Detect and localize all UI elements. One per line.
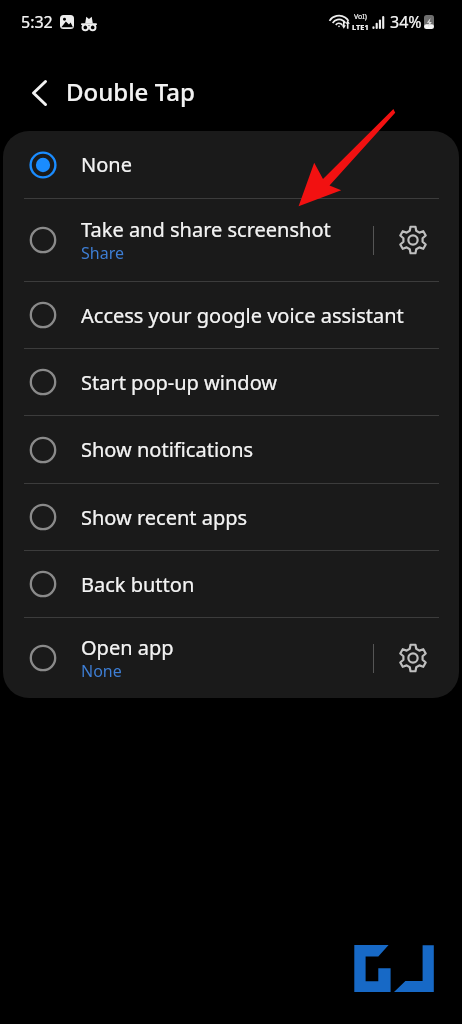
button[interactable]: Open app <box>3 618 459 698</box>
button[interactable]: Back <box>0 44 66 110</box>
staticText: 34% <box>390 11 422 33</box>
button[interactable]: Settings <box>374 618 459 698</box>
staticText: Double Tap <box>66 75 195 108</box>
button[interactable]: Back button <box>3 551 459 617</box>
button[interactable]: Show recent apps <box>3 484 459 550</box>
staticText: Share <box>81 242 124 264</box>
staticText: Start pop-up window <box>81 369 278 396</box>
staticText: Back button <box>81 571 195 598</box>
button[interactable]: Show notifications <box>3 416 459 483</box>
button[interactable]: None <box>3 131 459 198</box>
button[interactable]: Access your google voice assistant <box>3 282 459 348</box>
staticText: None <box>81 660 122 682</box>
staticText: 5:32 <box>21 11 53 33</box>
button[interactable]: Start pop-up window <box>3 349 459 415</box>
staticText: LTE1 <box>352 22 369 32</box>
staticText: Take and share screenshot <box>81 216 331 243</box>
staticText: VoI) <box>354 12 367 22</box>
button[interactable]: Take and share screenshot <box>3 199 459 281</box>
staticText: Access your google voice assistant <box>81 302 404 329</box>
button[interactable]: Settings <box>374 199 459 281</box>
staticText: Show recent apps <box>81 504 248 531</box>
staticText: Open app <box>81 634 174 661</box>
staticText: Show notifications <box>81 436 254 463</box>
staticText: None <box>81 151 132 178</box>
